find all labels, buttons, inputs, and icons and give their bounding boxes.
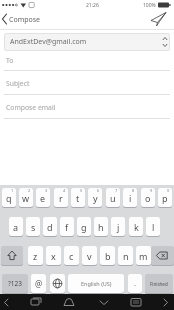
button[interactable]: English (US) [68,274,124,293]
staticText: 0 [167,188,170,193]
staticText: a [13,221,19,233]
staticText: g [81,221,87,233]
staticText: f [65,221,69,233]
button[interactable]: m [136,246,151,265]
staticText: t [76,192,80,204]
button[interactable]: t [71,188,85,207]
staticText: u [110,192,116,204]
button[interactable] [148,10,170,29]
button[interactable]: d [43,217,57,236]
staticText: 8 [132,188,135,193]
staticText: b [105,250,111,262]
button[interactable]: x [46,246,61,265]
staticText: . [134,279,136,289]
staticText: w [22,192,30,204]
staticText: c [69,250,74,262]
button[interactable]: p [158,188,172,207]
staticText: 1 [11,188,14,193]
staticText: To [6,56,14,65]
button[interactable]: f [60,217,74,236]
button[interactable]: g [77,217,91,236]
staticText: n [123,250,129,262]
staticText: Subject [6,79,30,88]
staticText: m [139,250,148,262]
staticText: j [117,221,120,233]
staticText: 2 [28,188,31,193]
staticText: i [129,192,132,204]
staticText: s [31,221,36,233]
button[interactable]: q [2,188,16,207]
staticText: v [87,250,92,262]
staticText: o [145,192,151,204]
staticText: q [6,192,12,204]
staticText: 7 [115,188,118,193]
staticText: ?123 [8,279,22,288]
staticText: 9 [150,188,153,193]
button[interactable] [151,246,174,265]
button[interactable]: i [123,188,137,207]
staticText: 4 [63,188,66,193]
staticText: 6 [97,188,100,193]
staticText: z [33,250,38,262]
button[interactable]: l [146,217,160,236]
button[interactable]: w [19,188,33,207]
button[interactable]: @ [31,274,46,293]
staticText: e [40,192,46,204]
button[interactable]: ?123 [2,274,28,293]
button[interactable]: k [129,217,143,236]
staticText: x [51,250,56,262]
button[interactable]: s [26,217,40,236]
button[interactable]: u [106,188,120,207]
button[interactable]: a [9,217,23,236]
staticText: 3 [45,188,48,193]
button[interactable] [1,246,23,265]
button[interactable]: j [111,217,125,236]
button[interactable]: Finished [145,274,173,293]
staticText: AndExtDev@gmail.com [10,37,87,47]
staticText: @ [35,278,43,289]
button[interactable] [50,274,65,293]
staticText: d [47,221,53,233]
button[interactable]: e [36,188,50,207]
staticText: Compose email [6,103,56,112]
button[interactable]: b [100,246,115,265]
button[interactable]: z [28,246,43,265]
staticText: 21:26 [86,2,99,9]
button[interactable]: . [128,274,142,293]
staticText: Compose [9,15,41,25]
button[interactable]: h [94,217,108,236]
button[interactable]: Compose email [0,100,174,119]
button[interactable]: AndExtDev@gmail.com [4,33,170,51]
staticText: p [162,192,168,204]
button[interactable]: v [82,246,97,265]
staticText: Finished [150,281,168,287]
staticText: r [59,192,63,204]
button[interactable]: c [64,246,79,265]
button[interactable]: o [141,188,155,207]
button[interactable]: Subject [0,76,174,95]
staticText: y [93,192,98,204]
staticText: h [98,221,104,233]
button[interactable]: r [54,188,68,207]
button[interactable]: y [88,188,102,207]
staticText: l [152,221,155,233]
staticText: 5 [80,188,83,193]
button[interactable]: Compose [0,10,90,29]
button[interactable]: n [118,246,133,265]
staticText: English (US) [81,280,112,287]
staticText: 100% [143,2,156,9]
button[interactable]: To [0,53,174,71]
staticText: k [134,221,139,233]
